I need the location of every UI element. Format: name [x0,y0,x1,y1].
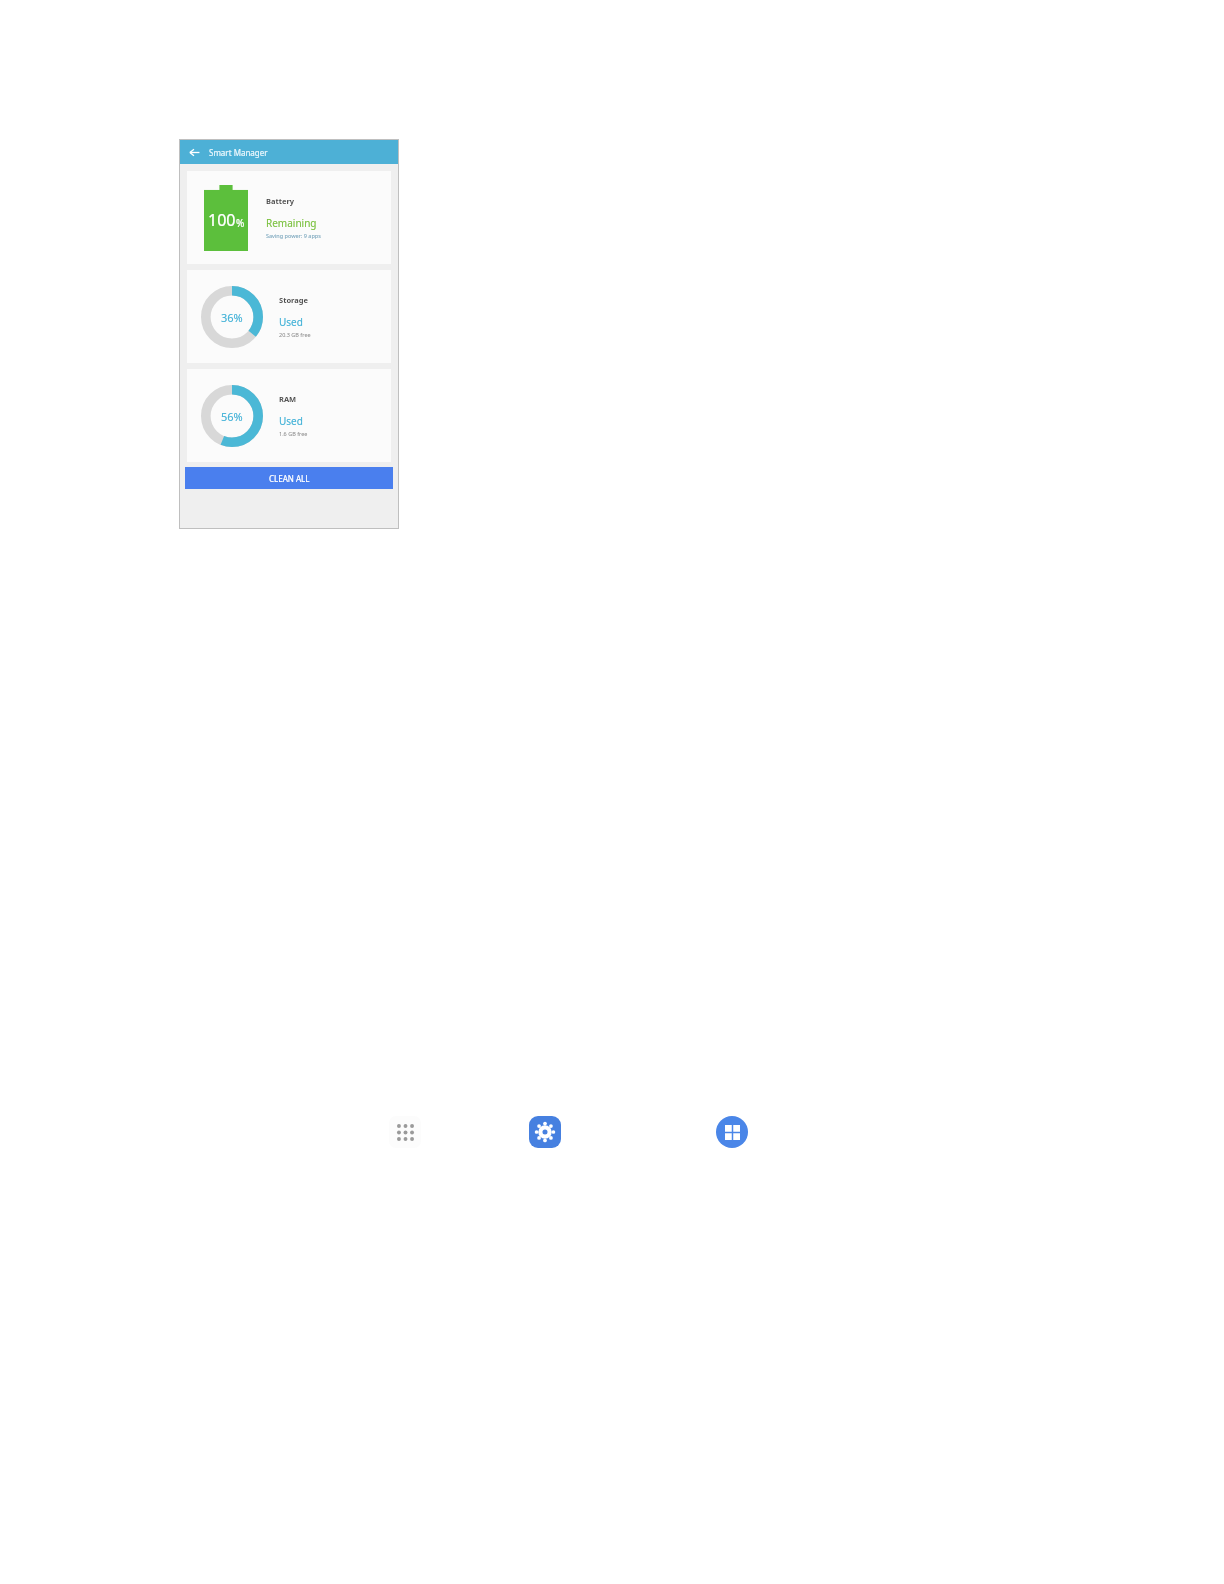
button[interactable]: Back [186,144,202,160]
staticText: 1.6 GB free [279,430,308,437]
staticText: CLEAN ALL [269,473,310,484]
button[interactable]: CLEAN ALL [185,467,393,489]
staticText: Battery [266,196,295,206]
staticText: 20.3 GB free [279,331,311,338]
staticText: Smart Manager [209,147,268,158]
button[interactable]: 36% [187,270,391,363]
staticText: % [236,216,245,230]
staticText: Used [279,315,303,329]
staticText: 36% [221,310,243,325]
button[interactable]: 56% [187,369,391,462]
button[interactable]: Settings [529,1116,561,1148]
staticText: 56% [221,409,243,424]
staticText: Saving power: 9 apps [266,232,321,239]
staticText: Remaining [266,216,317,230]
staticText: Storage [279,295,308,305]
button[interactable]: Apps [389,1116,421,1148]
staticText: Used [279,414,303,428]
staticText: 100 [208,209,236,231]
staticText: RAM [279,394,297,404]
button[interactable]: 100 [187,171,391,264]
button[interactable]: Grid [716,1116,748,1148]
